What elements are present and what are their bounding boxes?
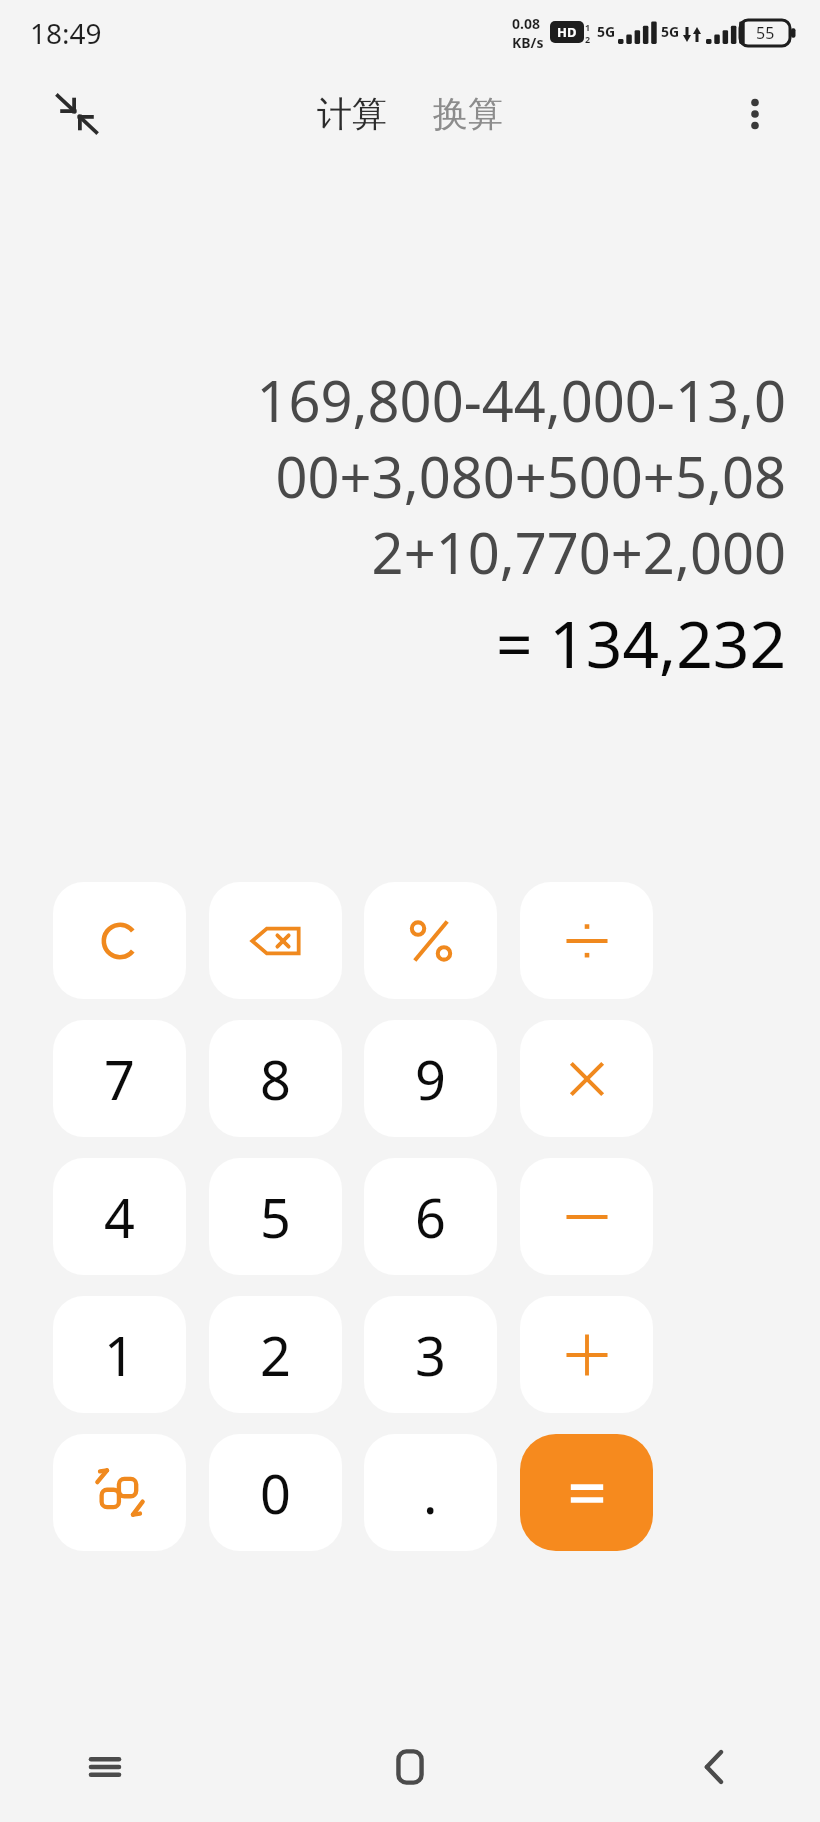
staticText: 0 xyxy=(260,1456,291,1530)
button[interactable]: Equals xyxy=(520,1434,653,1551)
staticText: 2 xyxy=(585,33,591,45)
staticText: 5 xyxy=(260,1180,291,1254)
button[interactable]: Minus xyxy=(520,1158,653,1275)
staticText: 6 xyxy=(415,1180,446,1254)
staticText: . xyxy=(423,1456,438,1530)
button[interactable]: More options xyxy=(720,79,790,149)
staticText: 00+3,080+500+5,08 xyxy=(34,438,786,514)
button[interactable]: 4 xyxy=(53,1158,186,1275)
button[interactable]: Clear xyxy=(53,882,186,999)
staticText: 4 xyxy=(104,1180,135,1254)
button[interactable]: Back xyxy=(670,1722,760,1812)
button[interactable]: 0 xyxy=(209,1434,342,1551)
staticText: 9 xyxy=(415,1042,446,1116)
button[interactable]: Recents xyxy=(60,1722,150,1812)
staticText: 1 xyxy=(585,21,591,33)
staticText: 2 xyxy=(260,1318,291,1392)
staticText: KB/s xyxy=(512,33,544,52)
staticText: 18:49 xyxy=(30,14,102,52)
staticText: 169,800-44,000-13,0 xyxy=(34,362,786,438)
button[interactable]: 计算 xyxy=(305,84,399,144)
button[interactable]: 5 xyxy=(209,1158,342,1275)
button[interactable]: . xyxy=(364,1434,497,1551)
button[interactable]: 9 xyxy=(364,1020,497,1137)
button[interactable]: Scientific xyxy=(53,1434,186,1551)
staticText: = 134,232 xyxy=(34,600,786,687)
staticText: 7 xyxy=(104,1042,135,1116)
staticText: HD xyxy=(557,23,577,41)
staticText: 8 xyxy=(260,1042,291,1116)
staticText: 3 xyxy=(415,1318,446,1392)
button[interactable]: Percent xyxy=(364,882,497,999)
button[interactable]: Plus xyxy=(520,1296,653,1413)
staticText: 1 xyxy=(104,1318,135,1392)
button[interactable]: 换算 xyxy=(421,84,515,144)
staticText: 55 xyxy=(756,22,775,44)
button[interactable]: Home xyxy=(365,1722,455,1812)
button[interactable]: 3 xyxy=(364,1296,497,1413)
staticText: 5G xyxy=(661,22,680,41)
button[interactable]: 1 xyxy=(53,1296,186,1413)
button[interactable]: Collapse xyxy=(42,79,112,149)
button[interactable]: 7 xyxy=(53,1020,186,1137)
button[interactable]: Backspace xyxy=(209,882,342,999)
staticText: 计算 xyxy=(317,92,387,136)
button[interactable]: 6 xyxy=(364,1158,497,1275)
staticText: 换算 xyxy=(433,92,503,136)
button[interactable]: Multiply xyxy=(520,1020,653,1137)
staticText: 0.08 xyxy=(512,14,540,33)
button[interactable]: 2 xyxy=(209,1296,342,1413)
button[interactable]: Divide xyxy=(520,882,653,999)
staticText: 5G xyxy=(597,22,616,41)
staticText: 2+10,770+2,000 xyxy=(34,514,786,590)
button[interactable]: 8 xyxy=(209,1020,342,1137)
